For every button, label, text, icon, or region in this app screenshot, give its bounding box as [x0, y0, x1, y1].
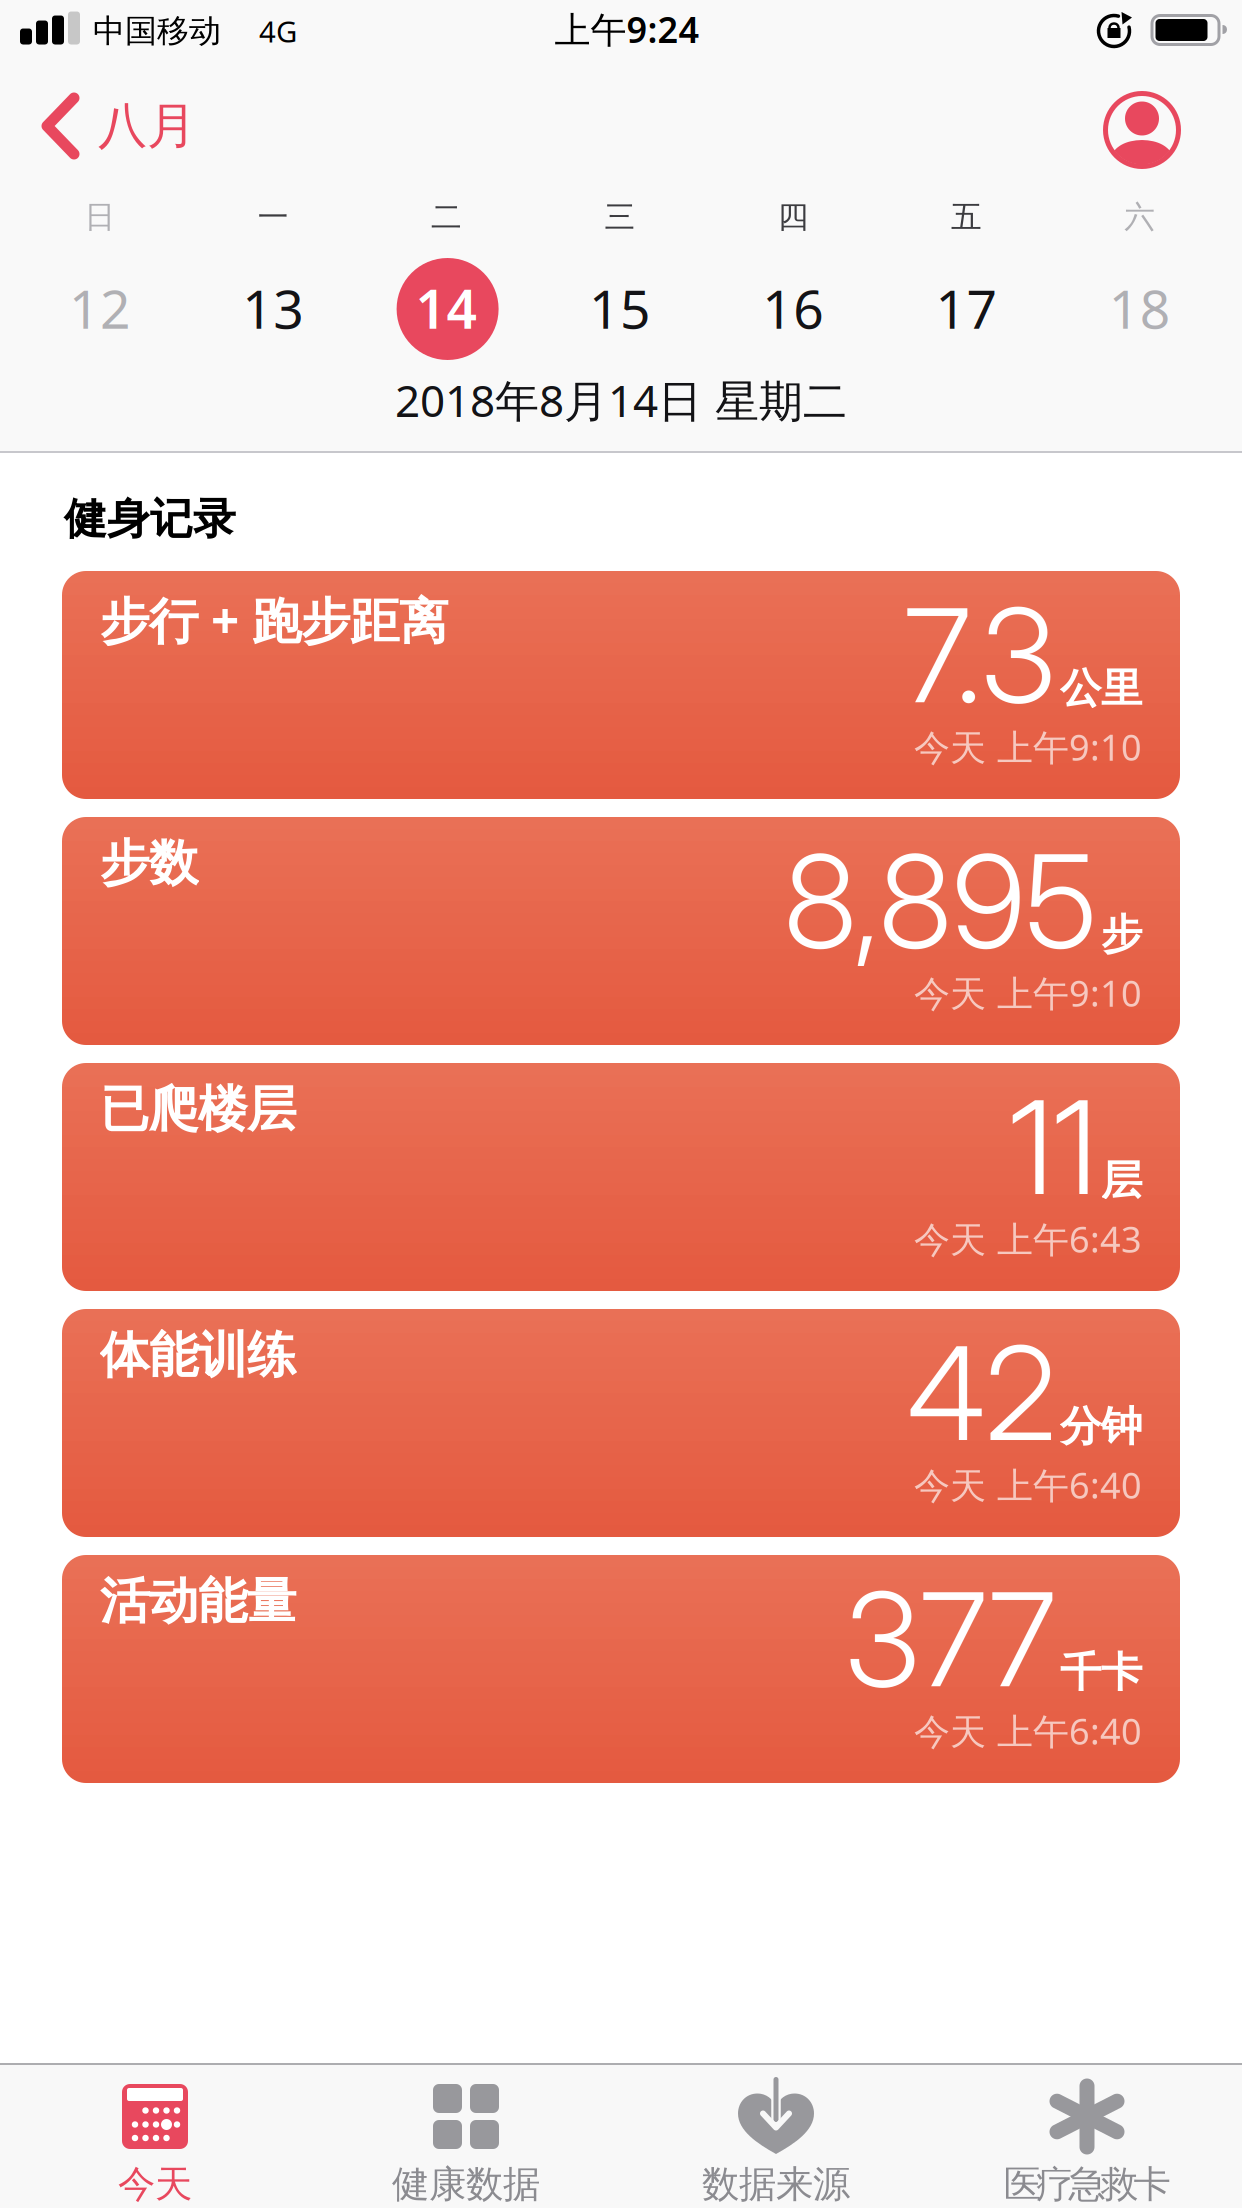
staticText: 4G: [259, 11, 297, 50]
staticText: 六: [1124, 198, 1155, 236]
staticText: 分钟: [1060, 1401, 1142, 1452]
button[interactable]: 医疗急救卡: [937, 2056, 1237, 2208]
button[interactable]: 体能训练: [62, 1309, 1180, 1537]
button[interactable]: 14: [416, 273, 478, 343]
staticText: 17: [935, 273, 997, 343]
button[interactable]: 13: [242, 273, 304, 343]
staticText: 8,895: [784, 823, 1097, 979]
staticText: 健身记录: [64, 493, 236, 545]
button[interactable]: 16: [762, 273, 824, 343]
button[interactable]: 步数: [62, 817, 1180, 1045]
staticText: 42: [907, 1315, 1056, 1471]
staticText: 18: [1109, 273, 1171, 343]
button[interactable]: 已爬楼层: [62, 1063, 1180, 1291]
button[interactable]: 步行 + 跑步距离: [62, 571, 1180, 799]
staticText: 14: [416, 273, 478, 343]
button[interactable]: 17: [935, 273, 997, 343]
staticText: 今天: [118, 2161, 192, 2207]
staticText: 医疗急救卡: [1003, 2161, 1170, 2207]
button[interactable]: [1103, 91, 1181, 169]
staticText: 中国移动: [93, 11, 221, 51]
staticText: 二: [431, 198, 462, 236]
staticText: 步: [1101, 909, 1142, 960]
button[interactable]: 今天: [5, 2056, 305, 2208]
staticText: 体能训练: [100, 1325, 296, 1386]
staticText: 已爬楼层: [100, 1079, 296, 1140]
staticText: 公里: [1060, 663, 1142, 714]
staticText: 日: [84, 198, 115, 236]
staticText: 千卡: [1060, 1647, 1142, 1698]
staticText: 五: [951, 198, 982, 236]
button[interactable]: 15: [589, 273, 651, 343]
staticText: 11: [1009, 1069, 1097, 1225]
staticText: 16: [762, 273, 824, 343]
staticText: 13: [242, 273, 304, 343]
button[interactable]: 数据来源: [626, 2056, 926, 2208]
staticText: 数据来源: [702, 2161, 850, 2207]
staticText: 377: [845, 1561, 1056, 1717]
button[interactable]: 八月: [40, 86, 196, 166]
staticText: 上午9:24: [554, 5, 699, 53]
staticText: 今天 上午6:43: [914, 1215, 1142, 1263]
staticText: 三: [604, 198, 635, 236]
staticText: 今天 上午6:40: [914, 1707, 1142, 1755]
staticText: 一: [258, 198, 289, 236]
staticText: 今天 上午9:10: [914, 723, 1142, 771]
staticText: 今天 上午9:10: [914, 969, 1142, 1017]
staticText: 7.3: [904, 577, 1056, 733]
button[interactable]: 健康数据: [316, 2056, 616, 2208]
staticText: 健康数据: [392, 2161, 540, 2207]
staticText: 八月: [98, 96, 196, 156]
staticText: 层: [1101, 1155, 1142, 1206]
button[interactable]: 18: [1109, 273, 1171, 343]
staticText: 2018年8月14日 星期二: [395, 371, 847, 429]
staticText: 活动能量: [100, 1571, 296, 1632]
staticText: 步行 + 跑步距离: [100, 587, 448, 652]
staticText: 15: [589, 273, 651, 343]
button[interactable]: 12: [69, 273, 131, 343]
staticText: 步数: [100, 833, 198, 894]
button[interactable]: 活动能量: [62, 1555, 1180, 1783]
staticText: 四: [778, 198, 809, 236]
staticText: 12: [69, 273, 131, 343]
staticText: 今天 上午6:40: [914, 1461, 1142, 1509]
